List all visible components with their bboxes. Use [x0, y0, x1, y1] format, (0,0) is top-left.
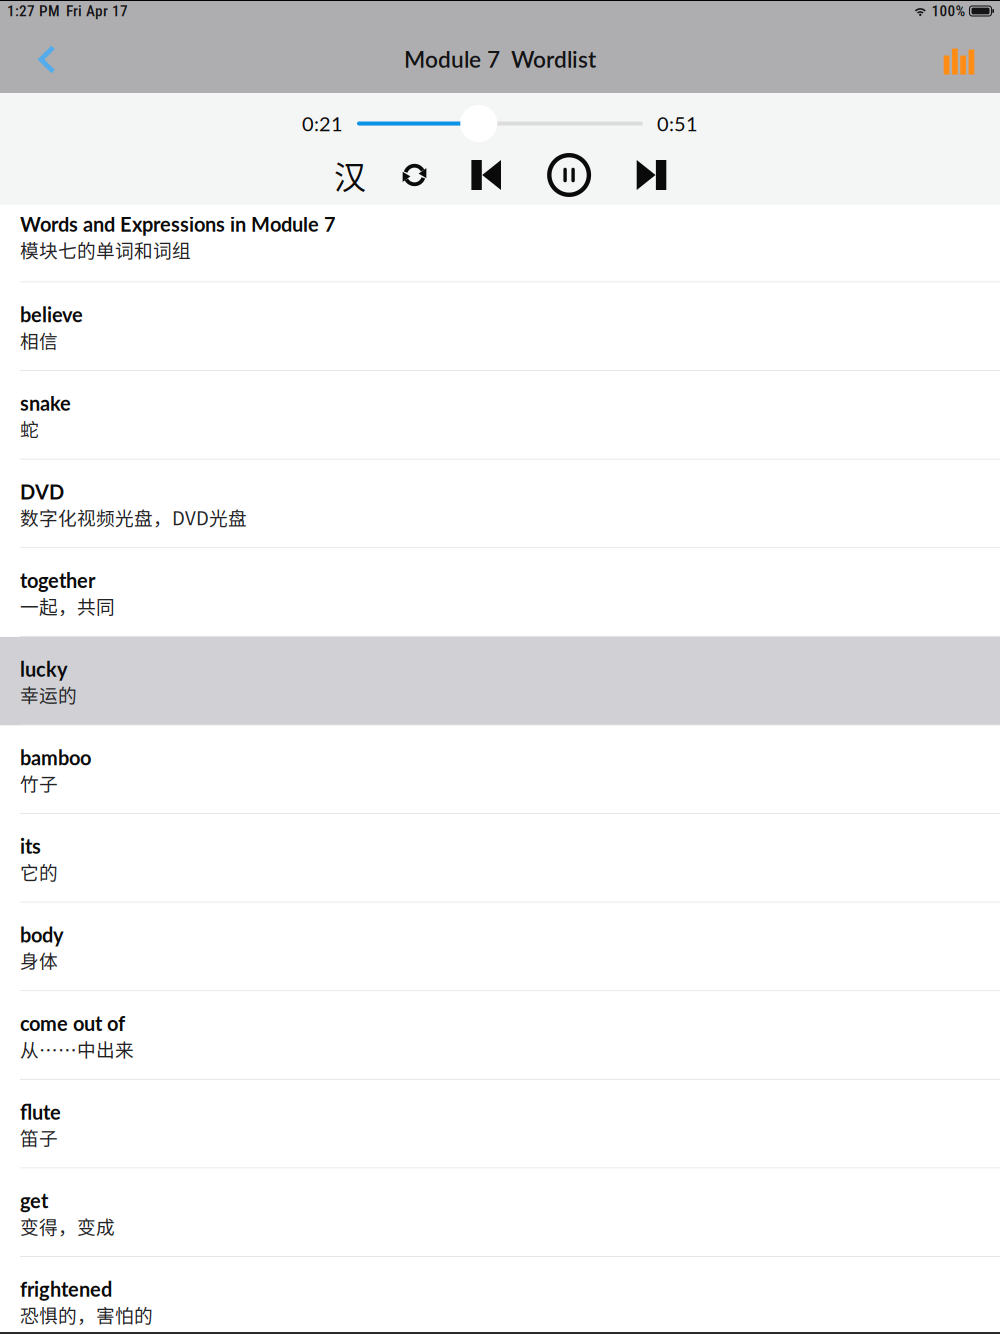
- button[interactable]: Back: [18, 23, 76, 95]
- staticText: Words and Expressions in Module 7: [20, 212, 336, 236]
- button[interactable]: flute: [0, 1080, 1000, 1168]
- staticText: 100%: [931, 2, 965, 20]
- button[interactable]: Words and Expressions in Module 7: [0, 205, 1000, 282]
- staticText: 恐惧的，害怕的: [20, 1301, 153, 1328]
- staticText: body: [20, 923, 64, 947]
- staticText: 数字化视频光盘，DVD光盘: [20, 504, 247, 531]
- staticText: 模块七的单词和词组: [20, 236, 191, 263]
- staticText: 相信: [20, 326, 58, 353]
- button[interactable]: DVD: [0, 460, 1000, 548]
- staticText: frightened: [20, 1277, 112, 1301]
- button[interactable]: believe: [0, 282, 1000, 371]
- staticText: lucky: [20, 657, 68, 681]
- staticText: 幸运的: [20, 681, 77, 708]
- staticText: 它的: [20, 858, 58, 885]
- button[interactable]: together: [0, 548, 1000, 637]
- button[interactable]: its: [0, 814, 1000, 903]
- staticText: bamboo: [20, 745, 91, 769]
- staticText: 一起，共同: [20, 592, 115, 619]
- staticText: believe: [20, 302, 83, 326]
- button[interactable]: Repeat: [382, 150, 447, 200]
- staticText: together: [20, 568, 95, 592]
- staticText: 从……中出来: [20, 1035, 134, 1062]
- staticText: Fri Apr 17: [66, 2, 128, 20]
- staticText: come out of: [20, 1011, 125, 1035]
- button[interactable]: bamboo: [0, 725, 1000, 814]
- button[interactable]: Show Chinese: [318, 150, 382, 200]
- staticText: flute: [20, 1100, 61, 1124]
- button[interactable]: come out of: [0, 991, 1000, 1080]
- button[interactable]: Pause: [525, 150, 613, 200]
- staticText: its: [20, 834, 41, 858]
- staticText: Module 7 Wordlist: [404, 45, 596, 73]
- staticText: 蛇: [20, 415, 39, 442]
- staticText: snake: [20, 391, 71, 415]
- button[interactable]: snake: [0, 371, 1000, 460]
- staticText: 0:51: [657, 111, 698, 135]
- button[interactable]: Statistics: [929, 23, 989, 95]
- staticText: 笛子: [20, 1124, 58, 1151]
- button[interactable]: body: [0, 903, 1000, 991]
- staticText: 变得，变成: [20, 1212, 115, 1239]
- button[interactable]: lucky: [0, 637, 1000, 725]
- button[interactable]: Next track: [613, 150, 690, 200]
- button[interactable]: get: [0, 1168, 1000, 1257]
- staticText: DVD: [20, 480, 64, 504]
- staticText: 身体: [20, 947, 58, 974]
- button[interactable]: Previous track: [447, 150, 525, 200]
- staticText: 汉: [334, 152, 366, 198]
- staticText: 0:21: [302, 111, 343, 135]
- staticText: 竹子: [20, 769, 58, 796]
- staticText: 1:27 PM: [7, 2, 60, 20]
- staticText: get: [20, 1188, 48, 1212]
- button[interactable]: frightened: [0, 1257, 1000, 1334]
